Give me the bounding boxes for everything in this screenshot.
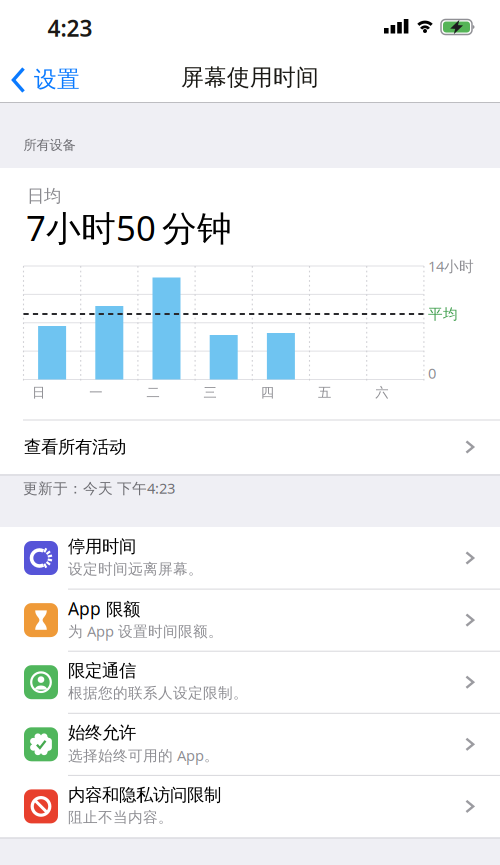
staticText: 平均 [428, 305, 458, 323]
button[interactable]: 始终允许 [0, 713, 500, 775]
staticText: App 限额 [68, 597, 140, 620]
staticText: 查看所有活动 [24, 436, 126, 458]
staticText: 更新于：今天 下午4:23 [23, 478, 175, 498]
staticText: 五 [318, 384, 331, 401]
staticText: 设置 [34, 66, 80, 93]
staticText: 屏幕使用时间 [181, 64, 319, 91]
staticText: 0 [428, 363, 436, 383]
button[interactable]: 限定通信 [0, 651, 500, 713]
button[interactable]: 返回设置 [0, 44, 110, 103]
staticText: 日 [32, 384, 45, 401]
staticText: 7小时50 分钟 [26, 204, 232, 250]
staticText: 四 [261, 384, 274, 401]
staticText: 日均 [27, 185, 61, 207]
button[interactable]: 内容和隐私访问限制 [0, 775, 500, 837]
staticText: 所有设备 [23, 137, 75, 153]
staticText: 限定通信 [68, 660, 136, 681]
staticText: 选择始终可用的 App。 [68, 746, 219, 765]
staticText: 设定时间远离屏幕。 [68, 560, 203, 578]
button[interactable]: 停用时间 [0, 527, 500, 589]
staticText: 内容和隐私访问限制 [68, 784, 221, 806]
staticText: 一 [89, 384, 102, 401]
staticText: 4:23 [47, 13, 92, 43]
staticText: 为 App 设置时间限额。 [68, 621, 223, 641]
staticText: 三 [204, 384, 217, 401]
staticText: 二 [146, 384, 159, 401]
staticText: 六 [375, 384, 388, 401]
staticText: 停用时间 [68, 536, 136, 557]
button[interactable]: App 限额 [0, 589, 500, 651]
staticText: 14小时 [428, 256, 474, 276]
button[interactable]: 查看所有活动 [0, 420, 500, 474]
staticText: 根据您的联系人设定限制。 [68, 684, 248, 702]
staticText: 阻止不当内容。 [68, 808, 173, 826]
staticText: 始终允许 [68, 722, 136, 743]
